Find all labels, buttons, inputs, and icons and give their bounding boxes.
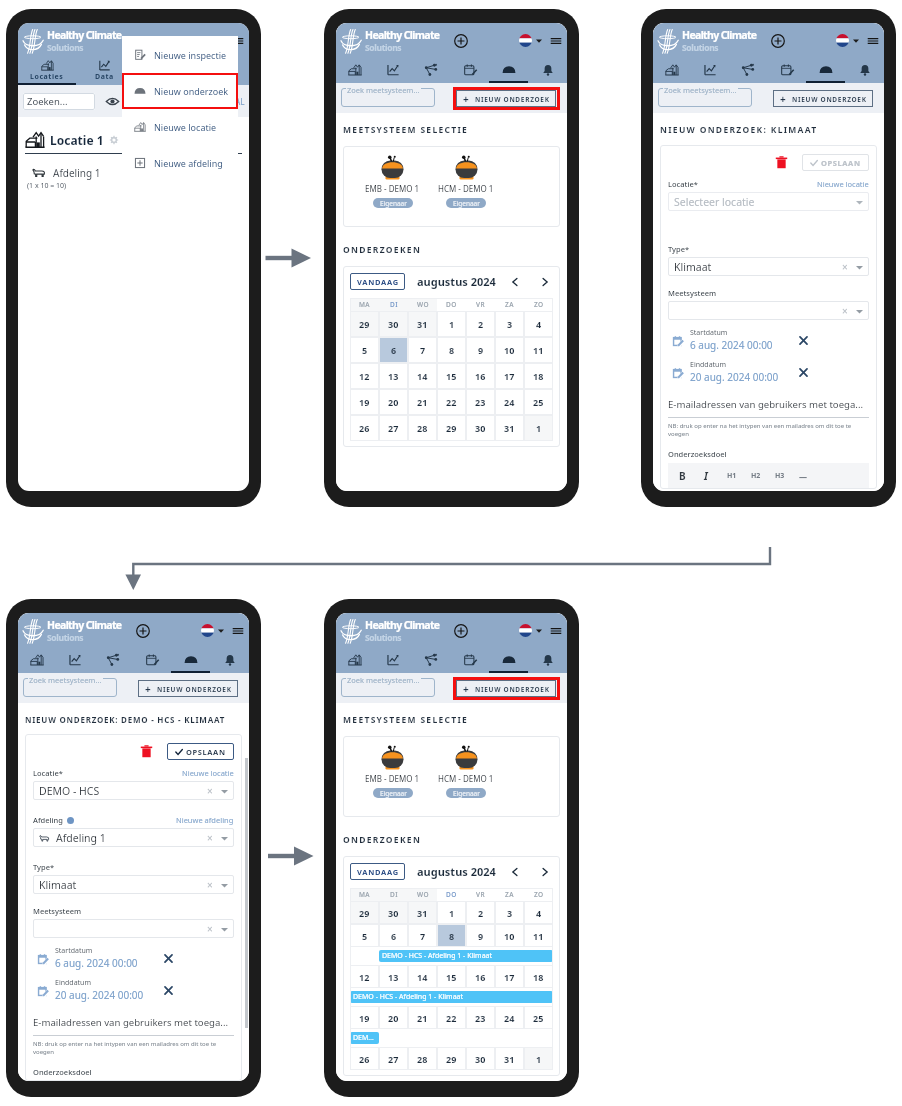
button[interactable]: Menu (550, 625, 562, 637)
button[interactable]: Netwerk (729, 58, 767, 81)
button[interactable]: HCM - DEMO 1 (438, 156, 494, 208)
button[interactable]: Vorige maand (509, 866, 521, 878)
button[interactable]: 8 (437, 337, 466, 363)
button[interactable]: 1 (524, 415, 553, 441)
button[interactable]: 24 (495, 1006, 524, 1029)
button[interactable]: Verwijderen (775, 156, 788, 169)
button[interactable]: Netwerk (94, 648, 132, 671)
button[interactable]: Afdeling 1 (33, 828, 234, 847)
button[interactable]: 18 (524, 363, 553, 389)
button[interactable]: 26 (350, 1047, 379, 1070)
button[interactable]: Selecteer locatie (668, 192, 869, 211)
button[interactable]: DEMO - HCS - Afdeling 1 - Klimaat (350, 991, 553, 1003)
button[interactable]: DEMO - HCS - Afdeling 1 - Klimaat (379, 950, 553, 962)
button[interactable]: Locaties (18, 648, 56, 671)
button[interactable]: 5 (350, 337, 379, 363)
button[interactable]: 22 (437, 1006, 466, 1029)
button[interactable]: 13 (379, 363, 408, 389)
button[interactable]: 30 (379, 311, 408, 337)
button[interactable]: 28 (408, 415, 437, 441)
button[interactable] (23, 678, 117, 697)
button[interactable]: Taal (201, 624, 214, 637)
button[interactable]: 3 (495, 311, 524, 337)
button[interactable]: Vorige maand (509, 276, 521, 288)
button[interactable]: 19 (350, 1006, 379, 1029)
button[interactable]: OPSLAAN (167, 743, 234, 760)
button[interactable]: Zoeken... (23, 93, 95, 110)
button[interactable]: 16 (466, 965, 495, 988)
button[interactable]: 18 (524, 965, 553, 988)
button[interactable]: Toevoegen (454, 624, 468, 638)
button[interactable]: OPSLAAN (802, 154, 869, 171)
button[interactable]: + (138, 680, 238, 697)
button[interactable]: Locaties (336, 58, 374, 81)
button[interactable]: Toevoegen (771, 34, 785, 48)
button[interactable]: 4 (524, 311, 553, 337)
button[interactable]: Data (691, 58, 729, 81)
button[interactable]: 29 (437, 415, 466, 441)
button[interactable]: 23 (466, 1006, 495, 1029)
button[interactable]: Menu (232, 35, 244, 47)
button[interactable]: 7 (408, 337, 437, 363)
button[interactable]: 31 (495, 1047, 524, 1070)
button[interactable]: 31 (408, 311, 437, 337)
button[interactable]: Data (56, 648, 94, 671)
button[interactable]: 27 (379, 415, 408, 441)
button[interactable]: + (456, 680, 556, 697)
button[interactable]: Data (374, 648, 412, 671)
button[interactable]: 30 (379, 901, 408, 924)
button[interactable]: 22 (437, 389, 466, 415)
button[interactable]: Menu (867, 35, 879, 47)
button[interactable]: 13 (379, 965, 408, 988)
button[interactable]: Startdatum (33, 946, 234, 970)
button[interactable]: 17 (495, 965, 524, 988)
button[interactable]: Meldingen (528, 648, 567, 671)
button[interactable]: Data (374, 58, 412, 81)
button[interactable]: × (668, 301, 869, 320)
button[interactable]: Agenda (450, 58, 489, 81)
button[interactable]: 1 (437, 311, 466, 337)
button[interactable]: Netwerk (412, 58, 450, 81)
button[interactable]: 10 (495, 924, 524, 947)
button[interactable]: 15 (437, 363, 466, 389)
button[interactable]: 15 (437, 965, 466, 988)
button[interactable]: 5 (350, 924, 379, 947)
button[interactable]: 2 (466, 311, 495, 337)
button[interactable]: 29 (437, 1047, 466, 1070)
button[interactable]: EMB - DEMO 1 (365, 156, 420, 208)
button[interactable]: 12 (350, 965, 379, 988)
button[interactable]: 30 (466, 1047, 495, 1070)
button[interactable]: 21 (408, 1006, 437, 1029)
button[interactable]: Taal (519, 624, 532, 637)
button[interactable]: + (456, 90, 556, 107)
button[interactable]: Klimaat (668, 257, 869, 276)
button[interactable]: 10 (495, 337, 524, 363)
button[interactable]: Agenda (767, 58, 806, 81)
button[interactable]: 20 (379, 1006, 408, 1029)
button[interactable]: Taal (519, 34, 532, 47)
button[interactable]: 14 (408, 363, 437, 389)
button[interactable]: 28 (408, 1047, 437, 1070)
button[interactable]: 30 (466, 415, 495, 441)
button[interactable]: Onderzoeken (171, 648, 210, 671)
button[interactable]: Einddatum (668, 360, 869, 384)
button[interactable]: 25 (524, 389, 553, 415)
button[interactable]: 12 (350, 363, 379, 389)
button[interactable]: Data (75, 58, 133, 83)
button[interactable]: Locaties (653, 58, 691, 81)
button[interactable]: Menu (550, 35, 562, 47)
button[interactable]: Startdatum (668, 328, 869, 352)
button[interactable]: VANDAAG (350, 273, 405, 290)
button[interactable]: 1 (524, 1047, 553, 1070)
button[interactable]: Einddatum (33, 978, 234, 1002)
button[interactable]: Nieuwe afdeling (122, 145, 238, 181)
button[interactable]: 31 (408, 901, 437, 924)
button[interactable]: Klimaat (33, 875, 234, 894)
button[interactable]: + (773, 90, 873, 107)
button[interactable]: 9 (466, 337, 495, 363)
button[interactable]: 1 (437, 901, 466, 924)
button[interactable]: 4 (524, 901, 553, 924)
button[interactable]: 8 (437, 924, 466, 947)
button[interactable]: 16 (466, 363, 495, 389)
button[interactable]: Meldingen (845, 58, 884, 81)
